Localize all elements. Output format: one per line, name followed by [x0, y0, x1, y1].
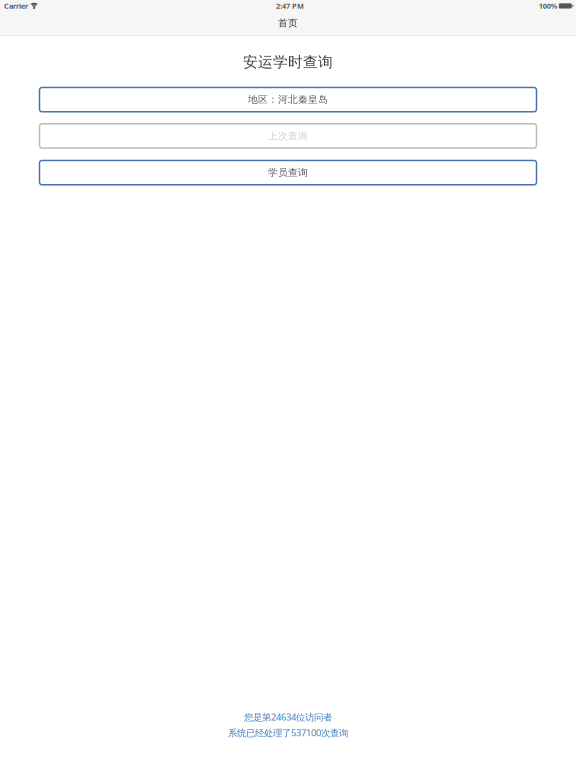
staticText: 上次查询 [268, 130, 308, 142]
staticText: 安运学时查询 [243, 53, 333, 71]
staticText: 首页 [278, 17, 298, 29]
staticText: 系统已经处理了537100次查询 [228, 726, 348, 739]
button[interactable]: 地区：河北秦皇岛 [39, 87, 536, 112]
staticText: 100% [539, 1, 558, 11]
staticText: 地区：河北秦皇岛 [248, 93, 328, 106]
staticText: 您是第24634位访问者 [244, 711, 332, 723]
staticText: 2:47 PM [276, 1, 304, 11]
button[interactable]: 上次查询 [39, 124, 536, 148]
staticText: Carrier [4, 1, 28, 11]
button[interactable]: 学员查询 [39, 160, 536, 185]
staticText: 学员查询 [268, 166, 308, 179]
